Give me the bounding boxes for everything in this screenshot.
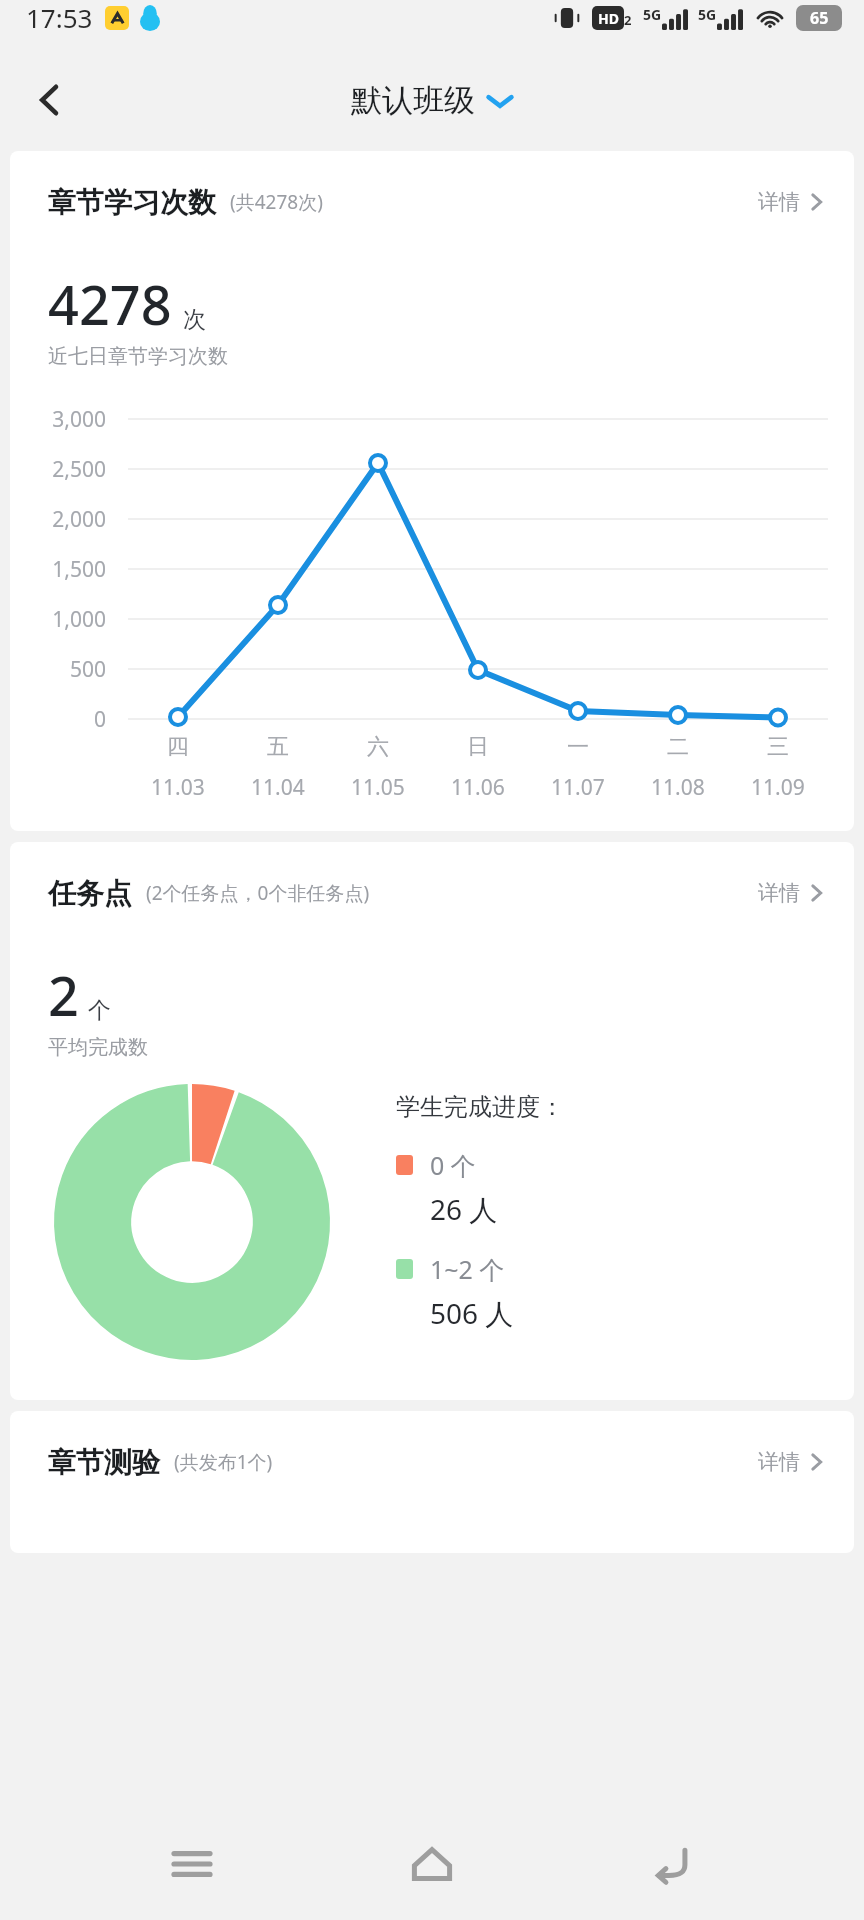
button[interactable]: 默认班级: [343, 75, 521, 126]
staticText: 11.08: [651, 773, 705, 802]
staticText: 1~2 个: [430, 1252, 505, 1286]
staticText: 日: [467, 733, 489, 761]
staticText: 2: [624, 11, 632, 29]
staticText: 3,000: [10, 405, 106, 434]
staticText: 六: [367, 733, 389, 761]
staticText: 5G: [698, 5, 717, 24]
staticText: 11.06: [451, 773, 505, 802]
staticText: (共4278次): [230, 189, 323, 215]
staticText: 0: [10, 705, 106, 734]
staticText: 5G: [643, 5, 662, 24]
staticText: 65: [810, 7, 829, 29]
staticText: 500: [10, 655, 106, 684]
staticText: 4278: [48, 267, 172, 341]
staticText: 2: [48, 958, 79, 1032]
button[interactable]: 详情: [758, 872, 824, 914]
staticText: 11.04: [251, 773, 305, 802]
button[interactable]: 详情: [758, 181, 824, 223]
staticText: (2个任务点，0个非任务点): [146, 880, 370, 906]
button[interactable]: Back: [14, 64, 86, 136]
staticText: 默认班级: [351, 81, 475, 120]
button[interactable]: Home: [384, 1816, 480, 1912]
staticText: 三: [767, 733, 789, 761]
staticText: 个: [88, 996, 111, 1025]
staticText: 1,500: [10, 555, 106, 584]
staticText: 11.09: [751, 773, 805, 802]
staticText: 四: [167, 733, 189, 761]
staticText: 1,000: [10, 605, 106, 634]
staticText: 506 人: [430, 1294, 514, 1332]
staticText: 学生完成进度：: [396, 1092, 564, 1122]
button[interactable]: Back: [624, 1816, 720, 1912]
button[interactable]: 详情: [758, 1441, 824, 1483]
staticText: 近七日章节学习次数: [48, 344, 228, 369]
staticText: 五: [267, 733, 289, 761]
staticText: 2,000: [10, 505, 106, 534]
staticText: 详情: [758, 1449, 800, 1475]
staticText: 11.07: [551, 773, 605, 802]
staticText: 章节学习次数: [48, 185, 216, 220]
staticText: 详情: [758, 189, 800, 215]
button[interactable]: 章节测验: [10, 1411, 854, 1553]
staticText: 详情: [758, 880, 800, 906]
button[interactable]: Recent apps: [144, 1816, 240, 1912]
staticText: 17:53: [26, 0, 93, 35]
staticText: 任务点: [48, 876, 132, 911]
staticText: 次: [183, 305, 206, 334]
staticText: 一: [567, 733, 589, 761]
staticText: 11.05: [351, 773, 405, 802]
staticText: 26 人: [430, 1190, 498, 1228]
staticText: HD: [598, 9, 619, 28]
staticText: 平均完成数: [48, 1035, 148, 1060]
button[interactable]: 任务点: [10, 842, 854, 1400]
staticText: 二: [667, 733, 689, 761]
staticText: 2,500: [10, 455, 106, 484]
staticText: 0 个: [430, 1148, 476, 1182]
button[interactable]: 章节学习次数: [10, 151, 854, 831]
staticText: (共发布1个): [174, 1449, 273, 1475]
staticText: 11.03: [151, 773, 205, 802]
staticText: 章节测验: [48, 1445, 160, 1480]
